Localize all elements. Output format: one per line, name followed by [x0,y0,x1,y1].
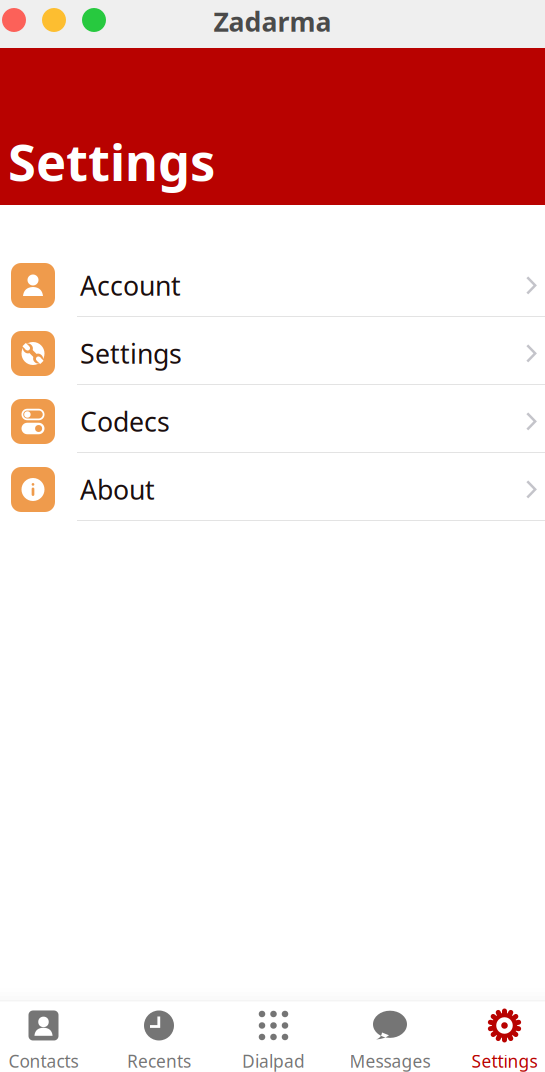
button[interactable]: Recents [101,1001,216,1072]
staticText: Settings [80,336,182,371]
button[interactable]: About [0,453,545,521]
staticText: Contacts [8,1049,78,1072]
staticText: Recents [127,1049,191,1072]
staticText: Settings [8,128,215,195]
staticText: Codecs [80,404,170,439]
button[interactable]: Dialpad [216,1001,331,1072]
button[interactable]: Settings [0,317,545,385]
button[interactable]: Account [0,249,545,317]
staticText: Dialpad [242,1049,305,1072]
button[interactable]: Messages [332,1001,447,1072]
staticText: About [80,472,155,507]
button[interactable]: Settings [447,1001,545,1072]
button[interactable]: Contacts [0,1001,101,1072]
button[interactable]: Codecs [0,385,545,453]
staticText: Zadarma [213,4,331,39]
staticText: Settings [471,1049,537,1072]
staticText: Account [80,268,181,303]
staticText: Messages [349,1049,430,1072]
